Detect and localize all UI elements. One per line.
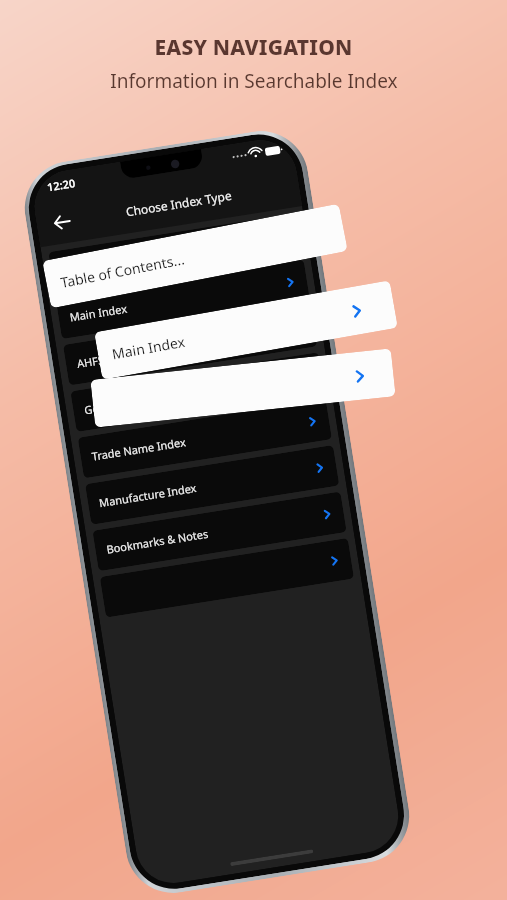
button[interactable]: Generic Name Index [70, 352, 325, 432]
staticText: Generic Name Index [83, 386, 190, 417]
staticText: Main Index [68, 301, 128, 325]
staticText: Choose Index Type [125, 187, 233, 219]
button[interactable] [100, 538, 354, 618]
staticText: EASY NAVIGATION [154, 33, 353, 62]
staticText: Information in Searchable Index [110, 68, 398, 94]
button[interactable]: Back [44, 205, 79, 239]
button[interactable]: Open index [90, 348, 396, 428]
staticText: Bookmarks & Notes [105, 526, 209, 557]
staticText: Table of Contents... [59, 249, 186, 292]
staticText: Table of Contents... [61, 248, 161, 278]
button[interactable]: Trade Name Index [78, 399, 332, 478]
button[interactable]: Table of Contents... [48, 213, 303, 293]
staticText: Trade Name Index [91, 434, 187, 464]
staticText: Manufacture Index [98, 480, 198, 510]
button[interactable]: Main Index [94, 280, 398, 380]
staticText: AHFS Class Index [76, 342, 166, 371]
staticText: 12:20 [46, 175, 77, 194]
button[interactable]: Table of Contents... [42, 204, 348, 308]
staticText: Main Index [110, 332, 187, 363]
button[interactable]: Manufacture Index [85, 445, 339, 525]
button[interactable]: Bookmarks & Notes [92, 491, 347, 571]
button[interactable]: AHFS Class Index [63, 306, 317, 386]
button[interactable]: Main Index [56, 259, 310, 339]
